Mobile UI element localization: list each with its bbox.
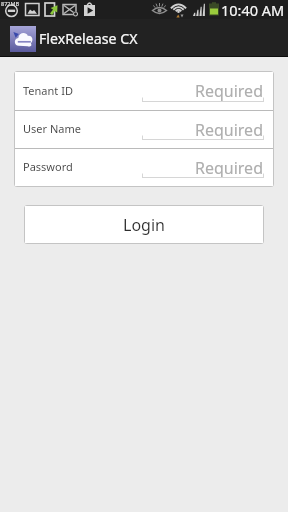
- staticText: Required: [195, 119, 263, 141]
- button[interactable]: Login: [24, 205, 264, 244]
- button[interactable]: User Name: [15, 111, 273, 148]
- staticText: FlexRelease CX: [39, 29, 138, 48]
- staticText: Tenant ID: [23, 83, 73, 98]
- staticText: User Name: [23, 121, 81, 136]
- button[interactable]: Password: [15, 149, 273, 186]
- button[interactable]: Tenant ID: [15, 72, 273, 110]
- staticText: Login: [123, 214, 165, 236]
- staticText: 10:40 AM: [221, 0, 285, 19]
- staticText: Required: [195, 80, 263, 102]
- other: FlexRelease CX app icon: [10, 26, 36, 52]
- staticText: Required: [195, 157, 263, 179]
- staticText: 872MB: [1, 0, 20, 7]
- staticText: Password: [23, 159, 73, 174]
